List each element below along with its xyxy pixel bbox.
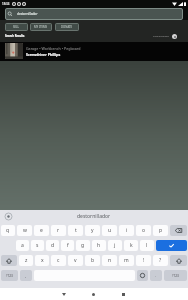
button[interactable]: f <box>61 240 74 251</box>
button[interactable]: Caps lock <box>170 255 187 266</box>
button[interactable]: l <box>140 240 154 251</box>
button[interactable]: ! <box>136 255 151 266</box>
button[interactable]: w <box>17 225 32 236</box>
staticText: z <box>25 257 28 264</box>
button[interactable]: g <box>76 240 90 251</box>
button[interactable]: Show Discarded <box>153 34 177 39</box>
button[interactable]: v <box>68 255 83 266</box>
button[interactable]: b <box>85 255 100 266</box>
button[interactable]: y <box>85 225 100 236</box>
staticText: Search Results <box>5 34 25 38</box>
staticText: ! <box>143 257 145 264</box>
staticText: destornillador <box>77 213 111 220</box>
button[interactable]: d <box>46 240 59 251</box>
staticText: t <box>75 227 77 234</box>
staticText: p <box>159 227 163 234</box>
button[interactable]: m <box>119 255 134 266</box>
staticText: b <box>91 257 95 264</box>
button[interactable]: Emoji <box>137 270 148 281</box>
staticText: w <box>23 227 27 234</box>
staticText: f <box>67 242 69 249</box>
staticText: i <box>126 227 128 234</box>
button[interactable]: q <box>1 225 15 236</box>
button[interactable]: a <box>16 240 29 251</box>
staticText: , <box>25 273 27 278</box>
staticText: c <box>57 257 60 264</box>
button[interactable]: h <box>92 240 106 251</box>
button[interactable]: Comma <box>20 270 32 281</box>
button[interactable]: c <box>51 255 66 266</box>
button[interactable]: Symbols <box>1 270 18 281</box>
staticText: ?123 <box>172 274 179 278</box>
button[interactable]: Voice input <box>4 212 13 221</box>
staticText: Show Discarded <box>153 35 169 38</box>
button[interactable]: Backspace <box>170 225 187 236</box>
button[interactable]: s <box>31 240 44 251</box>
button[interactable]: Back <box>52 288 75 300</box>
button[interactable]: DONATE <box>55 23 79 31</box>
button[interactable]: MY ITEMS <box>30 23 52 31</box>
staticText: v <box>74 257 77 264</box>
staticText: MY ITEMS <box>34 25 48 29</box>
staticText: q <box>6 227 10 234</box>
button[interactable]: Home <box>82 288 105 300</box>
staticText: g <box>81 242 85 249</box>
button[interactable]: t <box>68 225 83 236</box>
button[interactable]: i <box>119 225 134 236</box>
button[interactable]: p <box>153 225 168 236</box>
button[interactable]: n <box>102 255 117 266</box>
button[interactable]: Numbers <box>164 270 187 281</box>
staticText: destornillador <box>17 12 38 16</box>
staticText: k <box>130 242 133 249</box>
staticText: ? <box>159 257 162 264</box>
button[interactable]: SELL <box>5 23 28 31</box>
button[interactable]: x <box>35 255 49 266</box>
staticText: SELL <box>13 25 20 29</box>
button[interactable]: r <box>51 225 66 236</box>
staticText: r <box>57 227 60 234</box>
button[interactable]: Enter <box>156 240 187 251</box>
button[interactable]: k <box>124 240 138 251</box>
staticText: m <box>124 257 129 264</box>
staticText: DONATE <box>61 25 73 29</box>
button[interactable]: destornillador <box>5 8 183 20</box>
staticText: e <box>40 227 43 234</box>
staticText: j <box>114 242 116 249</box>
staticText: n <box>108 257 112 264</box>
staticText: o <box>142 227 146 234</box>
staticText: x <box>41 257 44 264</box>
button[interactable]: Recents <box>112 288 135 300</box>
button[interactable]: Period <box>150 270 162 281</box>
staticText: u <box>108 227 112 234</box>
button[interactable]: z <box>19 255 33 266</box>
staticText: s <box>36 242 39 249</box>
staticText: h <box>97 242 101 249</box>
button[interactable]: ? <box>153 255 168 266</box>
staticText: y <box>91 227 94 234</box>
staticText: Garage • Workbench • Pegboard <box>26 46 81 51</box>
staticText: 18:34 <box>2 2 10 6</box>
staticText: . <box>155 273 157 278</box>
other: Toggle discarded <box>172 34 177 39</box>
button[interactable]: Shift <box>1 255 17 266</box>
staticText: Screwdriver Phillips <box>26 52 61 57</box>
button[interactable]: o <box>136 225 151 236</box>
staticText: ?123 <box>6 274 13 278</box>
staticText: a <box>21 242 24 249</box>
button[interactable]: j <box>108 240 122 251</box>
button[interactable]: e <box>34 225 49 236</box>
button[interactable]: Garage • Workbench • Pegboard <box>5 43 188 59</box>
button[interactable]: u <box>102 225 117 236</box>
staticText: l <box>146 242 148 249</box>
staticText: d <box>51 242 55 249</box>
